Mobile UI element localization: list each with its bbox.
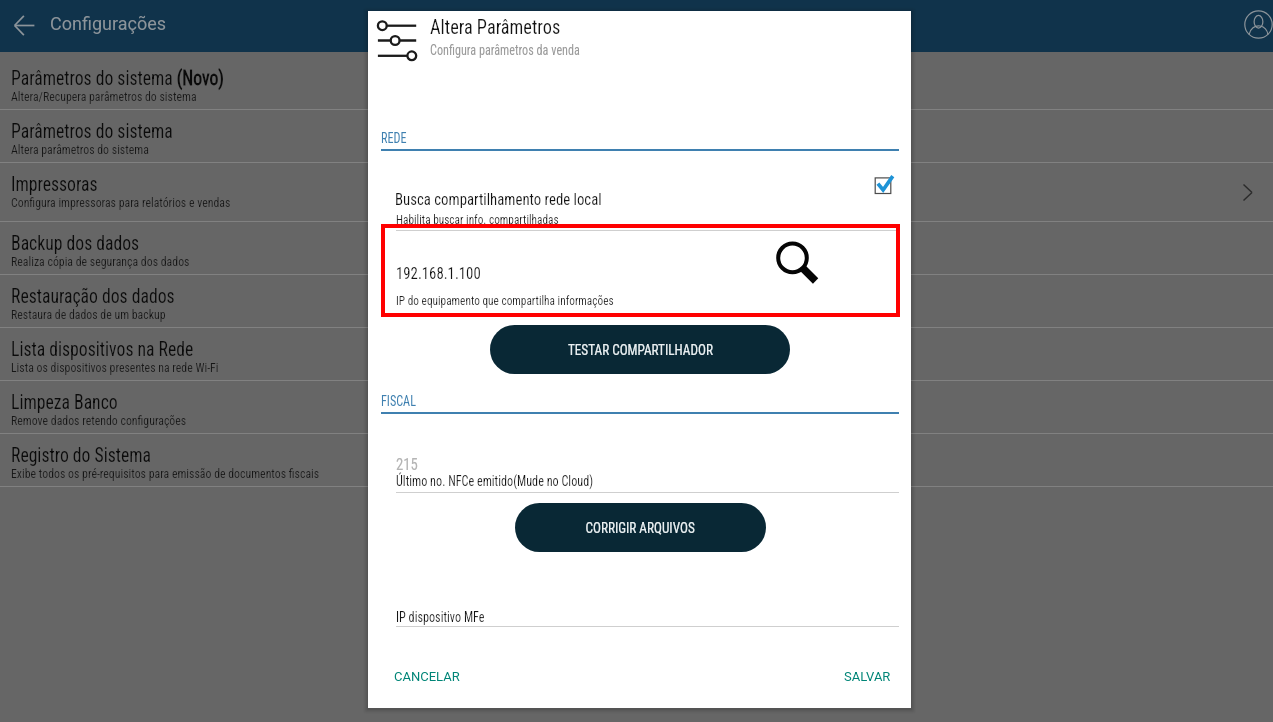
staticText: TESTAR COMPARTILHADOR (568, 341, 713, 359)
staticText: REDE (381, 130, 407, 146)
staticText: Configura parâmetros da venda (430, 42, 580, 58)
button[interactable]: Registro do Sistema (0, 434, 1273, 487)
button[interactable]: Conta do usuário (1244, 10, 1273, 39)
staticText: Altera/Recupera parâmetros do sistema (11, 88, 197, 104)
staticText: Realiza cópia de segurança dos dados (11, 253, 189, 269)
staticText: IP dispositivo MFe (396, 609, 485, 625)
staticText: 215 (396, 454, 419, 474)
button[interactable]: SALVAR (834, 661, 901, 692)
button[interactable]: CORRIGIR ARQUIVOS (515, 503, 766, 552)
staticText: CORRIGIR ARQUIVOS (585, 519, 695, 537)
button[interactable]: Limpeza Banco (0, 381, 1273, 434)
staticText: CANCELAR (394, 669, 460, 684)
staticText: Habilita buscar info. compartilhadas (396, 212, 559, 227)
button[interactable]: Backup dos dados (0, 222, 1273, 275)
staticText: Lista dispositivos na Rede (11, 337, 194, 361)
button[interactable]: TESTAR COMPARTILHADOR (490, 325, 790, 374)
button[interactable]: Lista dispositivos na Rede (0, 328, 1273, 381)
staticText: Configura impressoras para relatórios e … (11, 194, 231, 210)
staticText: Backup dos dados (11, 231, 140, 255)
button[interactable]: Parâmetros do sistema (Novo) (0, 57, 1273, 110)
staticText: Impressoras (11, 172, 98, 196)
button[interactable]: Parâmetros do sistema (0, 110, 1273, 163)
button[interactable]: Voltar (14, 15, 35, 36)
button[interactable]: Buscar dispositivo (770, 237, 818, 285)
staticText: Restaura de dados de um backup (11, 306, 166, 322)
staticText: Busca compartilhamento rede local (395, 189, 602, 209)
staticText: 192.168.1.100 (396, 263, 481, 283)
staticText: Remove dados retendo configurações (11, 412, 187, 428)
staticText: Altera Parâmetros (430, 15, 560, 40)
staticText: IP do equipamento que compartilha inform… (396, 293, 614, 308)
staticText: Registro do Sistema (11, 443, 152, 467)
staticText: Configurações (50, 13, 166, 34)
staticText: Limpeza Banco (11, 390, 118, 414)
staticText: Parâmetros do sistema (Novo) (11, 66, 224, 90)
staticText: Exibe todos os pré-requisitos para emiss… (11, 465, 320, 481)
staticText: Altera parâmetros do sistema (11, 141, 149, 157)
staticText: Parâmetros do sistema (11, 119, 173, 143)
staticText: SALVAR (844, 669, 891, 684)
staticText: Restauração dos dados (11, 284, 175, 308)
staticText: Último no. NFCe emitido(Mude no Cloud) (396, 473, 593, 489)
staticText: FISCAL (381, 393, 417, 409)
button[interactable]: Restauração dos dados (0, 275, 1273, 328)
staticText: Lista os dispositivos presentes na rede … (11, 359, 219, 375)
button[interactable]: Busca compartilhamento rede local (865, 172, 901, 208)
button[interactable]: CANCELAR (384, 661, 470, 692)
button[interactable]: Impressoras (0, 163, 1273, 222)
